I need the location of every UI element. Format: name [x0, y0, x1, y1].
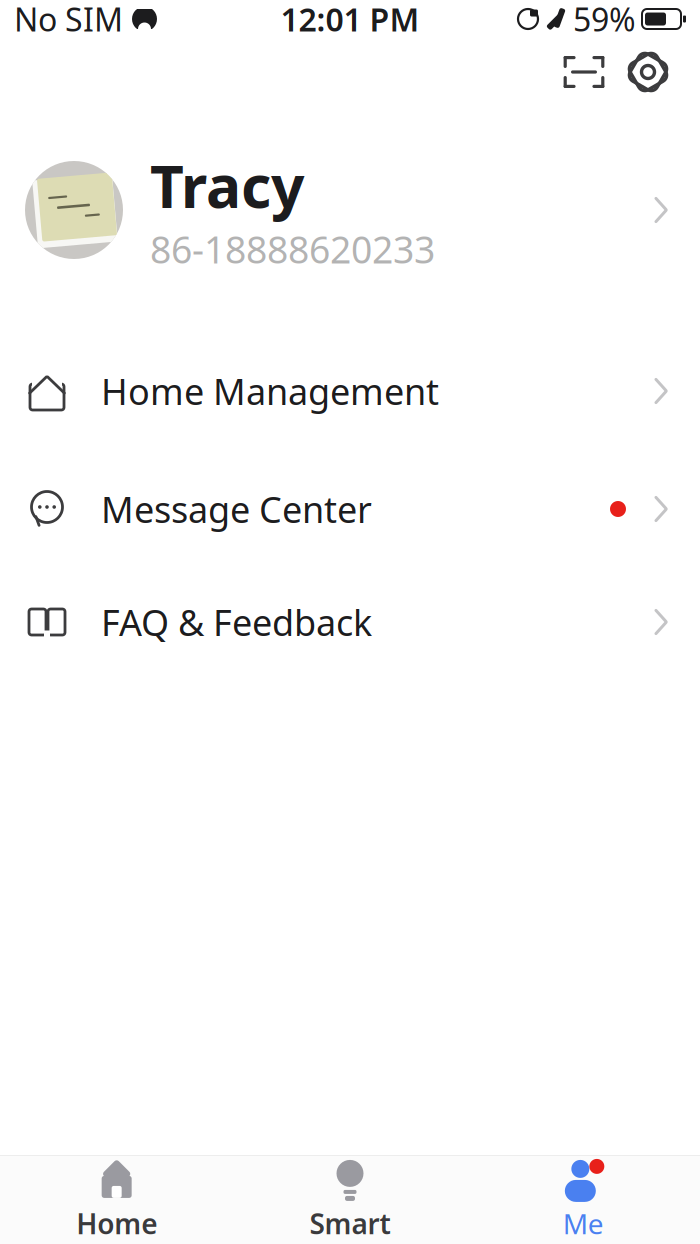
button[interactable]: FAQ & Feedback	[0, 568, 700, 676]
staticText: Me	[563, 1205, 604, 1242]
button[interactable]: Settings	[616, 40, 680, 104]
staticText: Message Center	[101, 485, 372, 533]
button[interactable]: Smart	[233, 1156, 467, 1244]
staticText: Tracy	[150, 146, 304, 224]
staticText: No SIM	[14, 0, 123, 40]
staticText: Home	[76, 1205, 157, 1242]
staticText: 86-18888620233	[150, 224, 435, 274]
staticText: 59%	[573, 0, 636, 40]
button[interactable]: Me	[467, 1156, 700, 1244]
staticText: 12:01 PM	[280, 0, 419, 40]
staticText: FAQ & Feedback	[101, 598, 372, 646]
button[interactable]: Message Center	[0, 450, 700, 568]
button[interactable]: Tracy	[0, 160, 700, 260]
button[interactable]: Home	[0, 1156, 233, 1244]
button[interactable]: Home Management	[0, 332, 700, 450]
staticText: Home Management	[101, 367, 439, 415]
staticText: Smart	[309, 1205, 390, 1242]
button[interactable]: Scan	[552, 40, 616, 104]
